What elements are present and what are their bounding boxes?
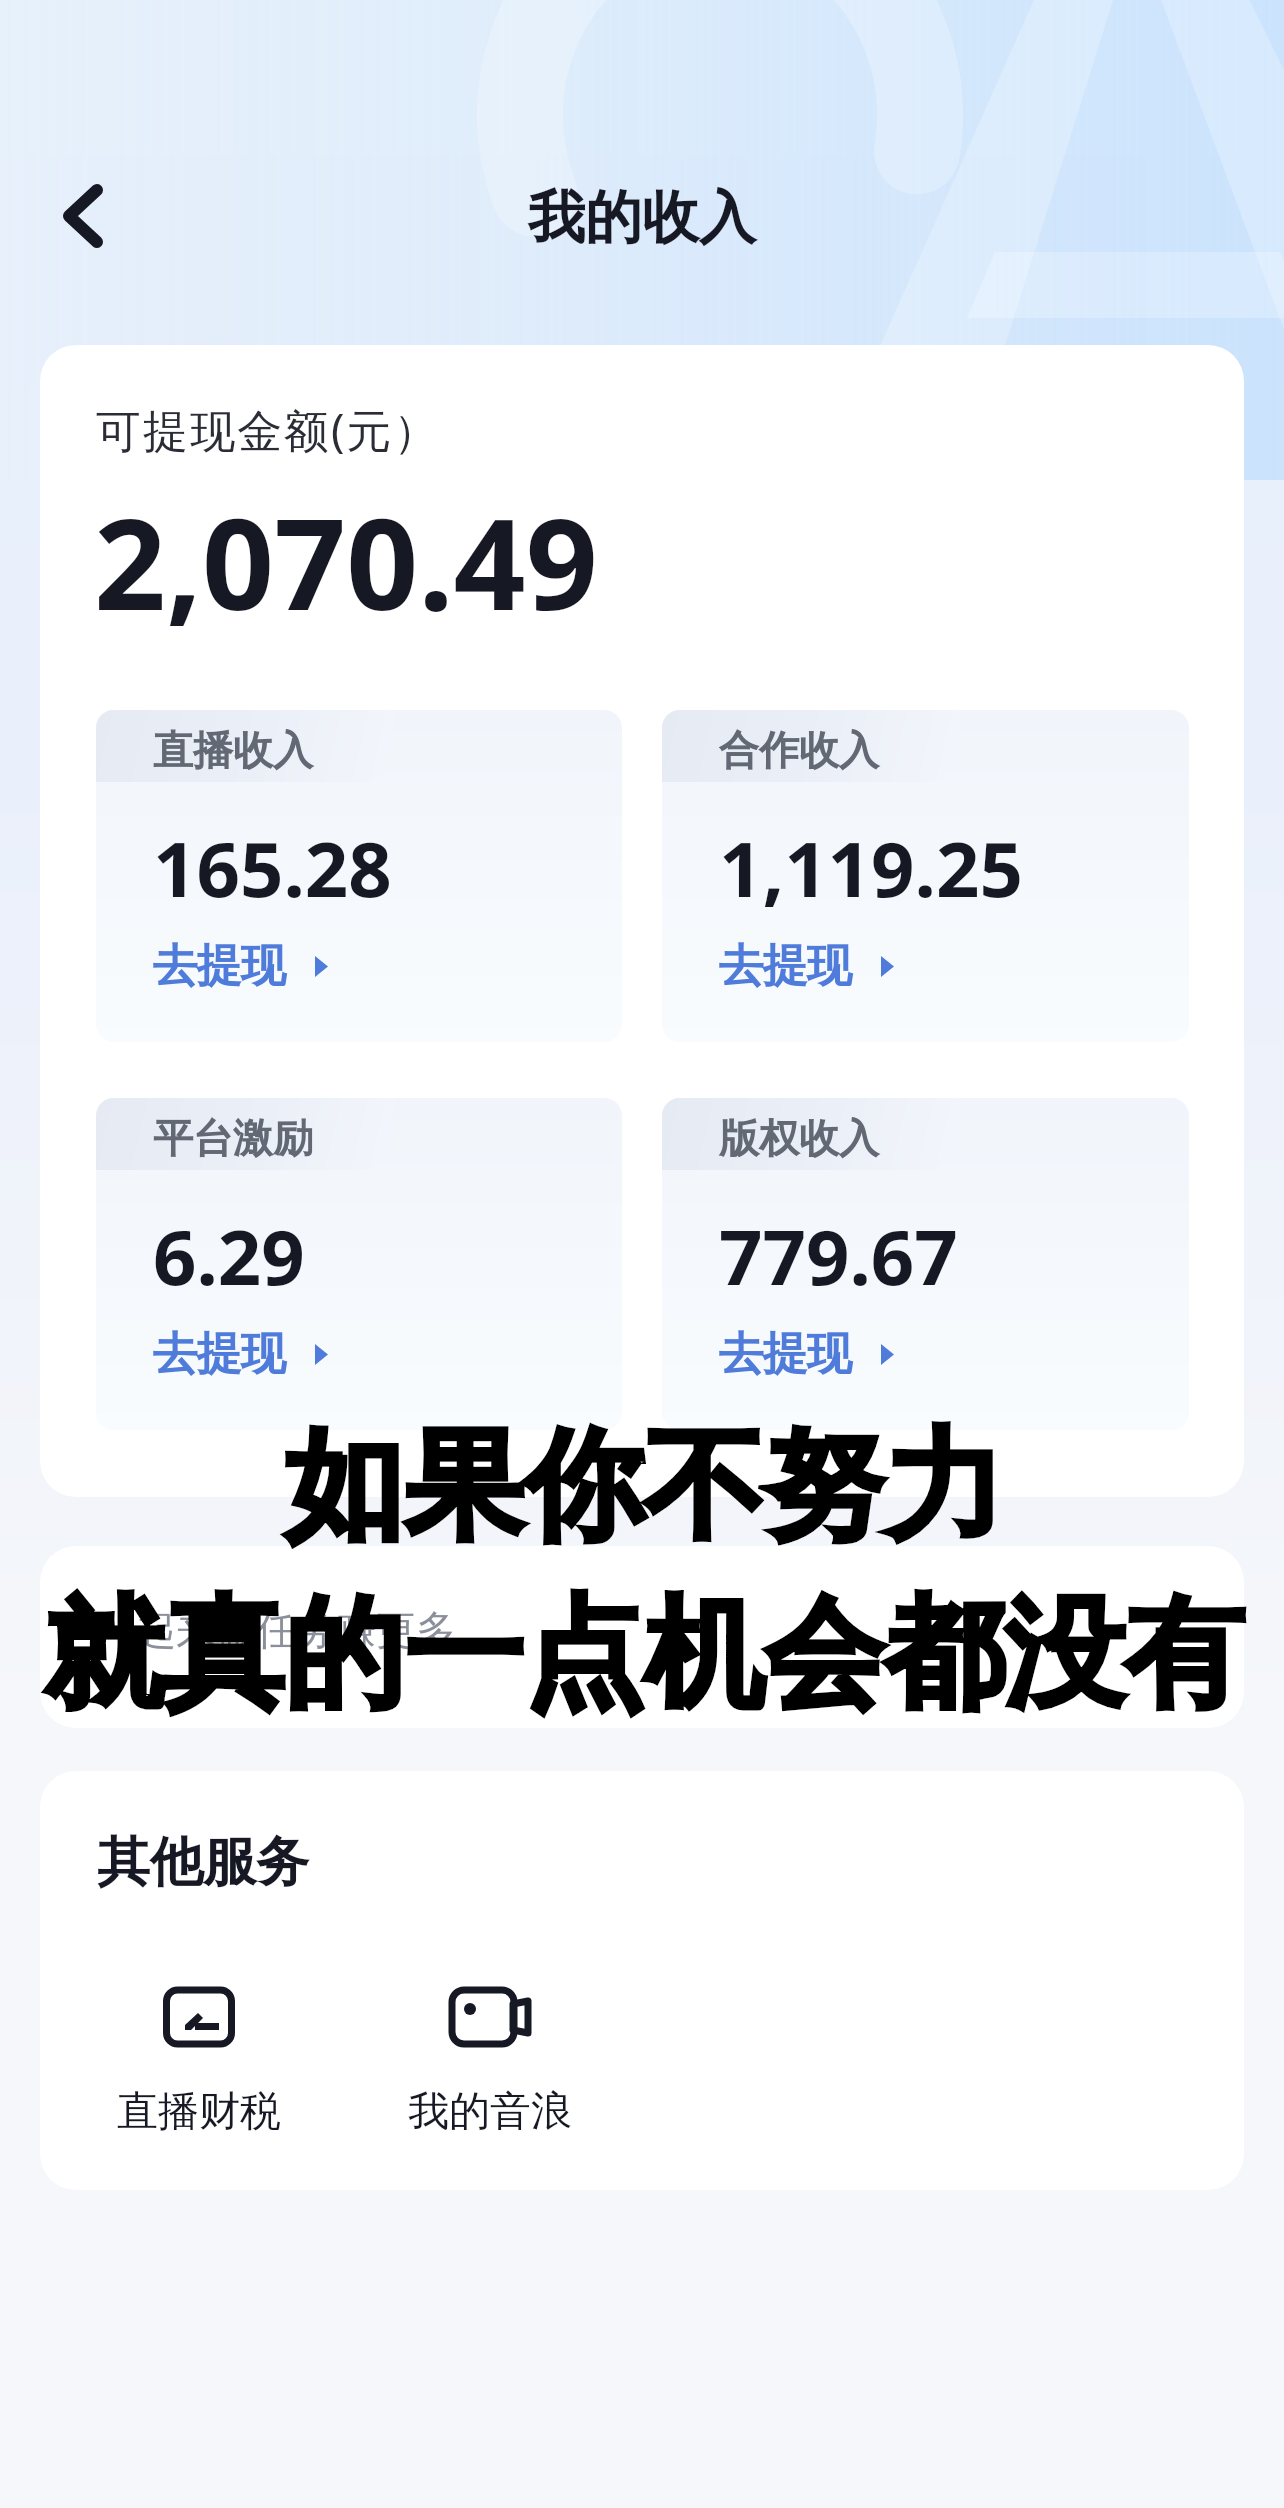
staticText: 直播收入 xyxy=(153,725,313,775)
staticText: 去提现 xyxy=(153,938,285,995)
staticText: 去提现 xyxy=(719,1326,851,1383)
staticText: 去提现 xyxy=(153,1326,285,1383)
button[interactable]: 直播财税 xyxy=(109,1986,289,2138)
staticText: 去提现 xyxy=(719,938,851,995)
staticText: 1,119.25 xyxy=(719,816,1023,920)
staticText: 就真的一点机会都没有 xyxy=(44,1579,1244,1730)
staticText: 779.67 xyxy=(719,1204,958,1308)
staticText: 其他服务 xyxy=(97,1829,309,1896)
staticText: 6.29 xyxy=(153,1204,305,1308)
staticText: 165.28 xyxy=(153,816,392,920)
staticText: 一起来做任务赚更多 xyxy=(96,1605,456,1655)
staticText: 我的音浪 xyxy=(408,2086,572,2138)
staticText: 2,070.49 xyxy=(94,475,598,647)
button[interactable]: 平台激励 xyxy=(96,1098,622,1430)
button[interactable]: 我的音浪 xyxy=(400,1986,580,2138)
button[interactable]: 合作收入 xyxy=(662,710,1189,1042)
button[interactable]: 一起来做任务赚更多 xyxy=(40,1546,1244,1728)
staticText: 版权收入 xyxy=(719,1113,879,1163)
button[interactable]: Back xyxy=(30,146,170,286)
button[interactable]: 版权收入 xyxy=(662,1098,1189,1430)
staticText: 平台激励 xyxy=(153,1113,313,1163)
button[interactable]: 直播收入 xyxy=(96,710,622,1042)
staticText: 可提现金额(元） xyxy=(96,399,441,460)
staticText: 直播财税 xyxy=(117,2086,281,2138)
staticText: 如果你不努力 xyxy=(284,1411,1004,1562)
staticText: 我的收入 xyxy=(528,182,756,254)
staticText: 合作收入 xyxy=(719,725,879,775)
